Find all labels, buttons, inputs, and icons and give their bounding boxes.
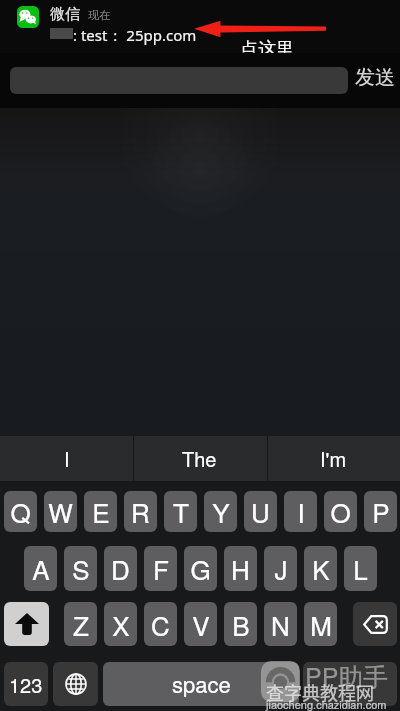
staticText: D — [111, 550, 130, 587]
staticText: G — [190, 550, 211, 587]
staticText: I'm — [320, 444, 347, 473]
button[interactable]: R — [124, 491, 157, 532]
staticText: 现在 — [88, 8, 110, 22]
staticText: PP助手 — [305, 657, 389, 693]
button[interactable]: B — [224, 602, 257, 646]
staticText: P — [372, 493, 390, 530]
staticText: B — [232, 606, 250, 643]
button[interactable]: U — [244, 491, 277, 532]
button[interactable]: E — [84, 491, 117, 532]
button[interactable]: Return — [303, 662, 397, 706]
staticText: E — [92, 493, 110, 530]
button[interactable]: X — [104, 602, 137, 646]
staticText: X — [112, 606, 130, 643]
button[interactable]: Q — [4, 491, 37, 532]
staticText: jiaocheng.chazidian.com — [266, 696, 387, 711]
button[interactable]: Switch keyboard — [53, 662, 98, 706]
staticText: 123 — [9, 670, 43, 699]
button[interactable]: I — [0, 436, 133, 481]
staticText: : test： 25pp.com — [73, 25, 197, 45]
button[interactable]: I — [284, 491, 317, 532]
button[interactable]: O — [324, 491, 357, 532]
staticText: Q — [10, 493, 31, 530]
button[interactable]: The — [133, 436, 266, 481]
button[interactable]: 微信 — [0, 0, 400, 53]
staticText: K — [312, 550, 330, 587]
button[interactable]: D — [104, 546, 137, 591]
staticText: Z — [73, 606, 89, 643]
staticText: J — [274, 550, 288, 587]
button[interactable]: N — [264, 602, 297, 646]
staticText: space — [172, 668, 231, 700]
staticText: R — [131, 493, 150, 530]
button[interactable]: 123 — [4, 662, 48, 706]
staticText: L — [353, 550, 368, 587]
button[interactable]: T — [164, 491, 197, 532]
staticText: Y — [212, 493, 230, 530]
staticText: The — [182, 444, 217, 473]
button[interactable]: Backspace — [353, 602, 397, 646]
staticText: 微信 — [50, 5, 80, 24]
button[interactable]: M — [304, 602, 337, 646]
staticText: T — [173, 493, 189, 530]
staticText: 查字典教程网 — [266, 679, 374, 705]
staticText: W — [48, 493, 73, 530]
button[interactable]: I'm — [267, 436, 400, 481]
button[interactable]: Y — [204, 491, 237, 532]
staticText: H — [231, 550, 250, 587]
staticText: M — [310, 606, 332, 643]
staticText: 发送 — [355, 65, 395, 90]
button[interactable]: A — [24, 546, 57, 591]
button[interactable]: S — [64, 546, 97, 591]
button[interactable]: 发送 — [355, 65, 395, 90]
button[interactable]: C — [144, 602, 177, 646]
staticText: 点这里 — [240, 38, 294, 61]
button[interactable]: W — [44, 491, 77, 532]
button[interactable]: G — [184, 546, 217, 591]
staticText: V — [192, 606, 210, 643]
button[interactable]: space — [103, 662, 299, 706]
button[interactable]: J — [264, 546, 297, 591]
staticText: N — [271, 606, 290, 643]
staticText: I — [64, 444, 70, 473]
button[interactable]: P — [364, 491, 397, 532]
button[interactable]: V — [184, 602, 217, 646]
button[interactable]: K — [304, 546, 337, 591]
staticText: O — [330, 493, 351, 530]
button[interactable]: H — [224, 546, 257, 591]
staticText: F — [153, 550, 169, 587]
staticText: U — [251, 493, 270, 530]
staticText: I — [297, 493, 305, 530]
staticText: C — [151, 606, 170, 643]
other: Pointer arrow — [194, 20, 326, 38]
staticText: S — [72, 550, 90, 587]
button[interactable]: Z — [64, 602, 97, 646]
staticText: A — [32, 550, 50, 587]
button[interactable]: Shift — [4, 602, 49, 646]
button[interactable]: L — [344, 546, 377, 591]
button[interactable]: F — [144, 546, 177, 591]
